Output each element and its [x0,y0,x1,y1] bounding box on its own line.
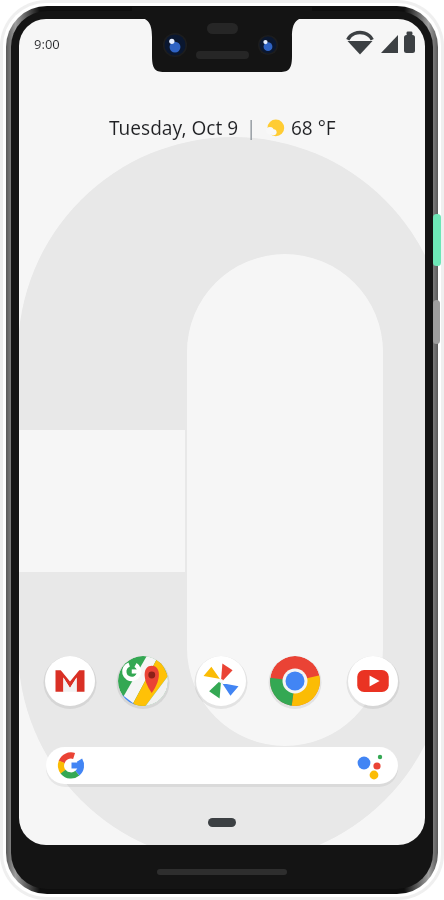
button[interactable]: Tuesday, Oct 9 [82,113,362,143]
staticText: Tuesday, Oct 9 [109,115,239,141]
staticText: 9:00 [34,35,60,53]
staticText: 68 °F [291,115,336,141]
button[interactable]: Chrome [270,656,320,706]
button[interactable]: Search [46,747,398,784]
button[interactable]: Google Assistant [352,750,386,780]
button[interactable]: Maps [118,656,168,706]
button[interactable]: YouTube [348,656,398,706]
button[interactable]: Gmail [45,656,95,706]
staticText: | [246,115,257,141]
button[interactable]: Photos [196,656,246,706]
